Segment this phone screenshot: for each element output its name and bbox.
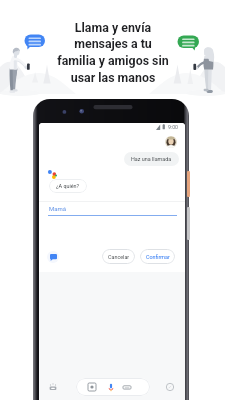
button[interactable]: Traducir	[44, 378, 62, 396]
button[interactable]: ¿A quién?	[49, 179, 87, 193]
staticText: Cancelar	[108, 254, 130, 260]
button[interactable]: Explorar	[161, 378, 179, 396]
staticText: 9:00	[168, 124, 179, 130]
button[interactable]: Mensaje	[47, 251, 59, 263]
staticText: Llama y envía mensajes a tu familia y am…	[57, 20, 169, 85]
staticText: Confirmar	[146, 254, 170, 260]
staticText: Haz una llamada	[131, 156, 172, 162]
button[interactable]: Haz una llamada	[124, 152, 179, 166]
button[interactable]: Cancelar	[102, 249, 135, 264]
staticText: ¿A quién?	[56, 183, 80, 189]
other: Teclado	[123, 384, 131, 390]
button[interactable]: Lens	[76, 378, 150, 396]
other: Lens	[88, 383, 96, 391]
staticText: Mamá	[49, 205, 67, 212]
button[interactable]: Confirmar	[140, 249, 175, 264]
other: Micrófono	[108, 383, 114, 392]
button[interactable]: Perfil	[165, 136, 177, 148]
